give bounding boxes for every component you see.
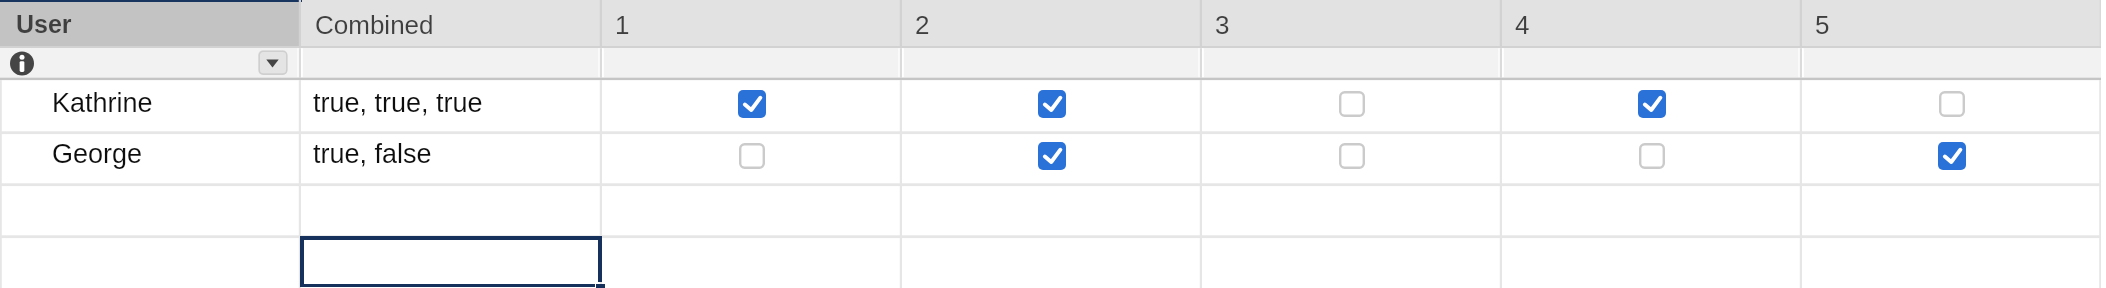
button[interactable]: Unchecked — [1639, 143, 1665, 169]
button[interactable] — [300, 79, 601, 131]
staticText: 3 — [1215, 10, 1230, 39]
staticText: 5 — [1815, 10, 1830, 39]
button[interactable] — [1201, 235, 1501, 288]
button[interactable]: Sort by User — [0, 0, 300, 46]
button[interactable] — [601, 235, 901, 288]
button[interactable]: Checked — [1938, 142, 1966, 170]
button[interactable] — [1501, 235, 1801, 288]
button[interactable] — [1201, 79, 1501, 131]
button[interactable]: Checked — [1038, 90, 1066, 118]
button[interactable] — [300, 183, 601, 235]
button[interactable] — [0, 235, 300, 288]
button[interactable] — [1801, 183, 2101, 235]
staticText: true, true, true — [313, 88, 483, 118]
button[interactable] — [1801, 235, 2101, 288]
button[interactable] — [901, 131, 1201, 183]
button[interactable]: Checked — [1038, 142, 1066, 170]
button[interactable] — [0, 79, 300, 131]
button[interactable] — [1501, 131, 1801, 183]
button[interactable]: Sort by 5 — [1801, 0, 2101, 46]
button[interactable] — [0, 183, 300, 235]
button[interactable]: Checked — [738, 90, 766, 118]
button[interactable]: Unchecked — [1339, 143, 1365, 169]
button[interactable] — [1801, 79, 2101, 131]
button[interactable] — [901, 183, 1201, 235]
staticText: 1 — [615, 10, 630, 39]
button[interactable] — [601, 183, 901, 235]
button[interactable] — [901, 235, 1201, 288]
button[interactable] — [601, 79, 901, 131]
button[interactable] — [1201, 183, 1501, 235]
button[interactable]: Column information — [10, 51, 35, 76]
button[interactable] — [601, 131, 901, 183]
button[interactable]: Filter options — [258, 51, 287, 75]
staticText: George — [52, 139, 143, 169]
button[interactable]: Unchecked — [739, 143, 765, 169]
button[interactable]: Sort by 2 — [901, 0, 1201, 46]
button[interactable] — [0, 131, 300, 183]
button[interactable] — [300, 131, 601, 183]
staticText: 2 — [915, 10, 930, 39]
button[interactable]: Unchecked — [1339, 91, 1365, 117]
button[interactable] — [1501, 183, 1801, 235]
button[interactable]: Sort by 3 — [1201, 0, 1501, 46]
staticText: Combined — [315, 10, 434, 39]
button[interactable] — [1801, 131, 2101, 183]
button[interactable] — [901, 79, 1201, 131]
button[interactable]: Sort by Combined — [300, 0, 601, 46]
button[interactable]: Checked — [1638, 90, 1666, 118]
staticText: true, false — [313, 139, 432, 169]
staticText: 4 — [1515, 10, 1530, 39]
button[interactable] — [1501, 79, 1801, 131]
button[interactable] — [1201, 131, 1501, 183]
staticText: User — [16, 10, 72, 38]
staticText: Kathrine — [52, 88, 153, 118]
button[interactable]: Sort by 4 — [1501, 0, 1801, 46]
button[interactable] — [300, 235, 601, 288]
button[interactable]: Sort by 1 — [601, 0, 901, 46]
button[interactable]: Unchecked — [1939, 91, 1965, 117]
